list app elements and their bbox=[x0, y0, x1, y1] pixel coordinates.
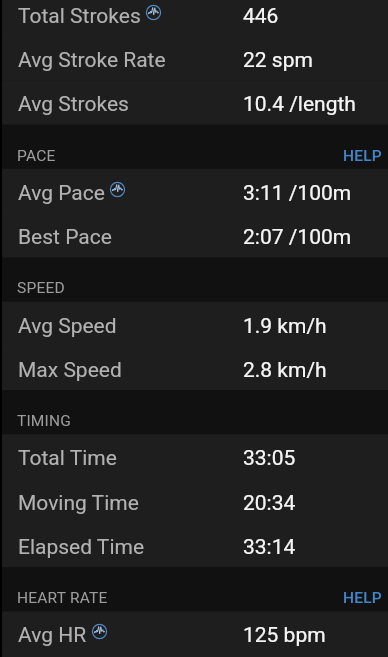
button[interactable]: Avg Pace bbox=[2, 169, 388, 213]
button[interactable]: Elapsed Time bbox=[2, 523, 388, 567]
staticText: Total Strokes bbox=[18, 4, 141, 29]
button[interactable]: Avg Strokes bbox=[2, 80, 388, 124]
staticText: HELP bbox=[343, 147, 382, 165]
staticText: Avg Pace bbox=[18, 181, 105, 206]
staticText: 3:11 /100m bbox=[243, 181, 352, 206]
staticText: 1.9 km/h bbox=[243, 314, 327, 339]
other: More info bbox=[92, 624, 107, 639]
staticText: TIMING bbox=[17, 412, 72, 430]
staticText: 2.8 km/h bbox=[243, 358, 327, 383]
button[interactable]: Moving Time bbox=[2, 479, 388, 523]
staticText: Avg Stroke Rate bbox=[18, 48, 166, 73]
button[interactable]: Avg Speed bbox=[2, 302, 388, 346]
staticText: Avg Strokes bbox=[18, 92, 129, 117]
button[interactable]: HELP bbox=[335, 567, 388, 611]
staticText: Max Speed bbox=[18, 358, 122, 383]
staticText: 2:07 /100m bbox=[243, 225, 352, 250]
button[interactable]: Max Speed bbox=[2, 346, 388, 390]
button[interactable]: Avg HR bbox=[2, 611, 388, 655]
staticText: SPEED bbox=[17, 279, 65, 297]
other: More info bbox=[146, 5, 161, 20]
staticText: Avg Speed bbox=[18, 314, 117, 339]
other: More info bbox=[110, 182, 125, 197]
staticText: PACE bbox=[17, 147, 56, 165]
button[interactable]: HELP bbox=[335, 125, 388, 169]
staticText: Moving Time bbox=[18, 491, 139, 516]
staticText: Avg HR bbox=[18, 623, 87, 648]
staticText: 10.4 /length bbox=[243, 92, 356, 117]
button[interactable]: Total Time bbox=[2, 434, 388, 478]
button[interactable]: Best Pace bbox=[2, 213, 388, 257]
staticText: 33:05 bbox=[243, 446, 296, 471]
staticText: HEART RATE bbox=[17, 589, 108, 607]
staticText: Total Time bbox=[18, 446, 117, 471]
staticText: 20:34 bbox=[243, 491, 296, 516]
staticText: Elapsed Time bbox=[18, 535, 145, 560]
button[interactable]: Total Strokes bbox=[2, 0, 388, 36]
staticText: 22 spm bbox=[243, 48, 313, 73]
staticText: 446 bbox=[243, 4, 279, 29]
staticText: HELP bbox=[343, 589, 382, 607]
button[interactable]: Avg Stroke Rate bbox=[2, 36, 388, 80]
staticText: Best Pace bbox=[18, 225, 112, 250]
staticText: 33:14 bbox=[243, 535, 296, 560]
staticText: 125 bpm bbox=[243, 623, 326, 648]
